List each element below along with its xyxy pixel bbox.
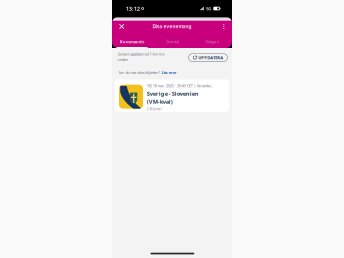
button[interactable]: Stäng — [115, 20, 128, 33]
staticText: UPPDATERA — [198, 55, 223, 60]
staticText: 3 Biljetter — [147, 107, 162, 111]
staticText: TIS 18 nov. 2025 · 20:45 CET | Strawbe… — [147, 83, 214, 88]
button[interactable]: Tidigare — [192, 35, 232, 49]
staticText: Kommande — [120, 39, 144, 44]
button[interactable]: Fler alternativ — [218, 20, 230, 33]
staticText: Senast uppdaterad 1 timme sedan — [118, 51, 165, 62]
staticText: Tidigare — [205, 39, 219, 44]
button[interactable]: Kommande — [112, 35, 152, 49]
button[interactable]: UPPDATERA — [189, 54, 227, 62]
staticText: 13:12 — [126, 5, 140, 12]
staticText: Ser du inte dina biljetter? — [119, 70, 161, 75]
button[interactable]: Läs mer — [162, 70, 177, 75]
staticText: (VM-kval) — [147, 98, 173, 105]
staticText: 5G — [206, 6, 211, 11]
button[interactable]: Övertid — [152, 35, 192, 49]
staticText: Läs mer — [162, 70, 177, 75]
staticText: Övertid — [165, 39, 178, 44]
staticText: Sverige - Slovenien — [147, 90, 199, 97]
button[interactable]: TIS 18 nov. 2025 · 20:45 CET | Strawbe… — [114, 79, 229, 112]
staticText: Dina evenemang — [152, 23, 191, 30]
